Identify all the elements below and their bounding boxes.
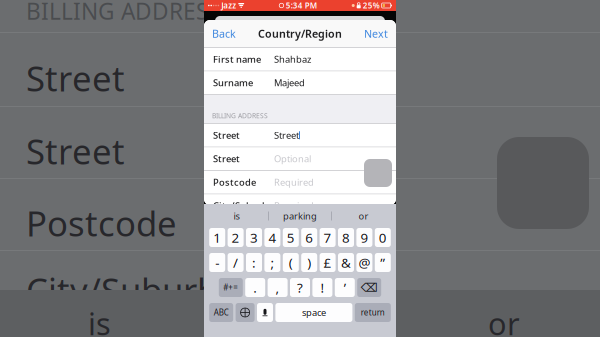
staticText: 0 — [379, 229, 387, 246]
staticText: 25% — [363, 0, 380, 11]
staticText: ABC — [214, 307, 229, 318]
staticText: Back — [212, 26, 236, 41]
staticText: 5 — [287, 229, 295, 246]
staticText: City/Suburb — [213, 200, 268, 212]
button[interactable]: First name — [204, 48, 396, 71]
staticText: Next — [364, 26, 388, 41]
button[interactable]: Street — [204, 124, 396, 147]
button[interactable]: / — [228, 253, 244, 272]
staticText: 1 — [213, 229, 221, 246]
staticText: Street — [26, 128, 125, 174]
button[interactable]: Switch keyboard language — [236, 303, 255, 322]
staticText: & — [341, 254, 351, 271]
staticText: 7 — [324, 229, 332, 246]
staticText: is — [88, 303, 111, 337]
button[interactable]: 8 — [338, 228, 354, 247]
staticText: ! — [320, 279, 324, 296]
button[interactable]: parking — [269, 207, 331, 225]
staticText: : — [252, 254, 256, 271]
staticText: 8 — [342, 229, 350, 246]
staticText: Jazz — [221, 0, 236, 11]
staticText: parking — [283, 210, 317, 222]
staticText: . — [253, 279, 257, 296]
staticText: ; — [270, 254, 274, 271]
button[interactable]: Street — [204, 147, 396, 171]
staticText: Optional — [274, 153, 311, 165]
button[interactable]: 9 — [356, 228, 372, 247]
staticText: ⌫ — [361, 281, 378, 294]
button[interactable]: 7 — [320, 228, 336, 247]
staticText: / — [233, 254, 238, 271]
button[interactable]: ⌫ — [357, 278, 381, 297]
staticText: ) — [307, 254, 311, 271]
staticText: Majeed — [274, 77, 305, 89]
staticText: @ — [358, 254, 370, 271]
staticText: Country/Region — [258, 26, 342, 41]
staticText: or — [358, 210, 368, 222]
staticText: 4 — [268, 229, 276, 246]
button[interactable]: ) — [301, 253, 317, 272]
button[interactable]: , — [268, 278, 288, 297]
button[interactable]: . — [245, 278, 265, 297]
button[interactable]: return — [355, 303, 391, 322]
staticText: ” — [380, 254, 385, 271]
staticText: ? — [297, 279, 303, 296]
staticText: £ — [324, 254, 332, 271]
staticText: , — [276, 279, 280, 296]
button[interactable]: ABC — [209, 303, 233, 322]
staticText: Postcode — [213, 176, 256, 188]
button[interactable]: ’ — [335, 278, 355, 297]
staticText: Postcode — [26, 200, 177, 246]
button[interactable]: ( — [283, 253, 299, 272]
button[interactable]: 5 — [283, 228, 299, 247]
staticText: 9 — [360, 229, 368, 246]
button[interactable]: @ — [356, 253, 372, 272]
button[interactable]: 0 — [375, 228, 391, 247]
button[interactable]: 2 — [228, 228, 244, 247]
button[interactable]: ? — [290, 278, 310, 297]
staticText: parking — [253, 303, 364, 337]
button[interactable]: £ — [320, 253, 336, 272]
staticText: Street — [274, 129, 299, 141]
staticText: 2 — [232, 229, 240, 246]
staticText: is — [233, 210, 239, 222]
button[interactable]: #+= — [219, 278, 243, 297]
staticText: First name — [213, 53, 261, 65]
staticText: City/Suburb — [26, 267, 218, 313]
staticText: Required — [274, 200, 314, 212]
button[interactable]: Next — [358, 20, 396, 47]
button[interactable]: ! — [312, 278, 332, 297]
staticText: BILLING ADDRESS — [26, 0, 220, 26]
button[interactable]: & — [338, 253, 354, 272]
staticText: - — [215, 254, 219, 271]
button[interactable]: - — [209, 253, 225, 272]
button[interactable]: 1 — [209, 228, 225, 247]
staticText: space — [302, 306, 326, 319]
button[interactable]: City/Suburb — [204, 194, 396, 218]
staticText: ’ — [344, 279, 346, 296]
staticText: or — [488, 303, 520, 337]
staticText: 5:34 PM — [286, 0, 317, 11]
staticText: Street — [213, 153, 240, 165]
button[interactable]: is — [205, 207, 268, 225]
button[interactable]: Dictate — [257, 303, 273, 322]
staticText: Street — [26, 55, 125, 101]
button[interactable]: Back — [204, 20, 242, 47]
staticText: Shahbaz — [274, 53, 311, 65]
button[interactable]: : — [246, 253, 262, 272]
button[interactable]: ” — [375, 253, 391, 272]
button[interactable]: 3 — [246, 228, 262, 247]
staticText: Required — [274, 176, 314, 188]
button[interactable]: ; — [264, 253, 280, 272]
button[interactable]: 6 — [301, 228, 317, 247]
staticText: 6 — [305, 229, 313, 246]
staticText: BILLING ADDRESS — [212, 111, 268, 120]
staticText: return — [361, 307, 385, 318]
button[interactable]: space — [275, 303, 352, 322]
button[interactable]: Surname — [204, 71, 396, 95]
button[interactable]: 4 — [264, 228, 280, 247]
button[interactable]: or — [332, 207, 395, 225]
staticText: #+= — [223, 282, 238, 293]
staticText: Surname — [213, 77, 253, 89]
button[interactable]: Postcode — [204, 171, 396, 194]
